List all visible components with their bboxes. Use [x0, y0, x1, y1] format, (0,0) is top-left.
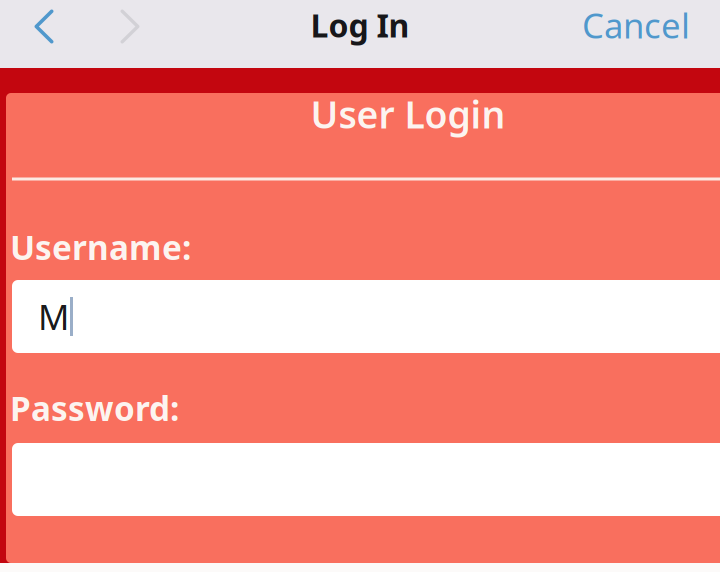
- staticText: Username:: [10, 225, 191, 269]
- button[interactable]: Back: [12, 0, 76, 53]
- staticText: M: [38, 293, 69, 339]
- staticText: Password:: [10, 386, 179, 430]
- staticText: User Login: [310, 89, 505, 139]
- button[interactable]: Username: [12, 280, 720, 353]
- button[interactable]: Cancel: [566, 0, 706, 52]
- staticText: Log In: [310, 4, 409, 46]
- staticText: Cancel: [582, 2, 690, 48]
- button[interactable]: Forward: [98, 0, 162, 53]
